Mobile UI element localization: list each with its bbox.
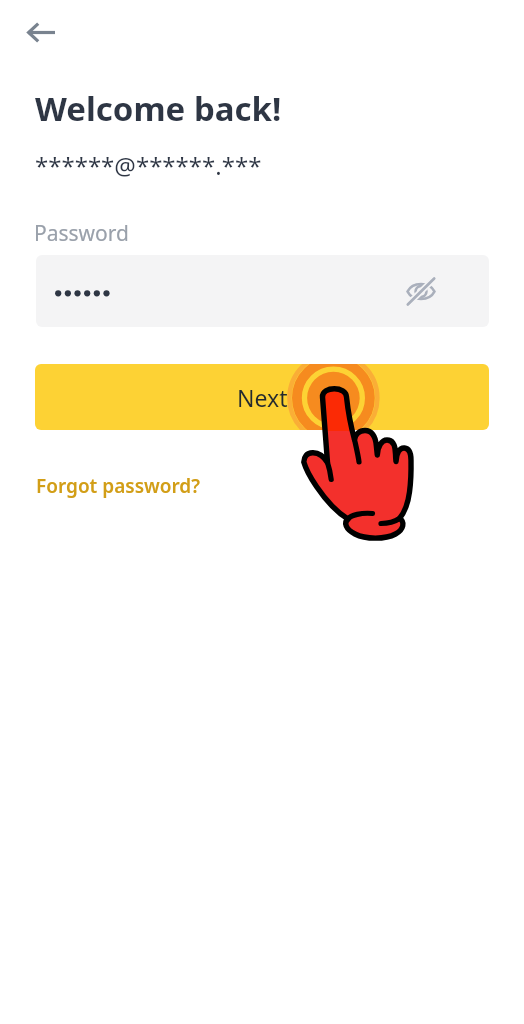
button[interactable]: Next	[35, 364, 489, 430]
button[interactable]: Show password	[36, 255, 489, 327]
button[interactable]: Back	[9, 0, 73, 64]
button[interactable]: Forgot password?	[36, 473, 201, 499]
staticText: Welcome back!	[35, 86, 282, 131]
staticText: Forgot password?	[36, 473, 201, 499]
button[interactable]: Show password	[399, 269, 443, 313]
staticText: Password	[34, 219, 129, 248]
staticText: Next	[237, 382, 288, 413]
staticText: ******@******.***	[35, 149, 262, 182]
